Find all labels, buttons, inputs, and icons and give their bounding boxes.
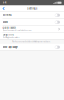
staticText: Sound	[2, 21, 7, 23]
staticText: Show big headers in lists	[2, 36, 19, 38]
staticText: Large title	[2, 33, 13, 36]
staticText: Open the camera from the lock screen	[2, 29, 31, 31]
button[interactable]: Wireless	[0, 12, 64, 18]
button[interactable]: Show app badge	[0, 44, 64, 50]
staticText: Wireless	[2, 14, 11, 16]
button[interactable]: Large title	[0, 33, 64, 39]
staticText: Settings	[27, 7, 37, 10]
staticText: Notifications may be delayed while low p…	[12, 41, 50, 43]
staticText: 9:41	[2, 1, 6, 4]
staticText: Quick launch	[2, 27, 15, 29]
button[interactable]: Quick launch	[0, 26, 64, 32]
button[interactable]: Back	[0, 5, 6, 11]
button[interactable]: Sound	[0, 19, 64, 25]
staticText: Show app badge	[2, 46, 17, 48]
